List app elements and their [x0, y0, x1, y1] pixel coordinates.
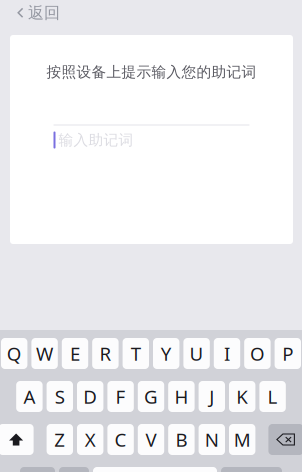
- button[interactable]: V: [138, 424, 164, 455]
- staticText: N: [205, 427, 219, 452]
- staticText: R: [99, 341, 111, 366]
- button[interactable]: H: [168, 381, 195, 412]
- staticText: W: [36, 341, 53, 366]
- staticText: F: [116, 384, 126, 409]
- staticText: H: [174, 384, 188, 409]
- staticText: S: [55, 384, 65, 409]
- staticText: J: [209, 384, 214, 409]
- button[interactable]: R: [92, 338, 119, 369]
- staticText: 输入助记词: [58, 131, 133, 149]
- button[interactable]: Y: [153, 338, 179, 369]
- button[interactable]: J: [199, 381, 225, 412]
- button[interactable]: Z: [47, 424, 73, 455]
- button[interactable]: Emoji: [59, 467, 89, 472]
- button[interactable]: 返回: [0, 0, 70, 26]
- button[interactable]: K: [229, 381, 255, 412]
- button[interactable]: T: [123, 338, 149, 369]
- button[interactable]: P: [275, 338, 301, 369]
- staticText: L: [268, 384, 278, 409]
- staticText: C: [115, 427, 127, 452]
- button[interactable]: Space: [93, 467, 217, 472]
- button[interactable]: L: [259, 381, 286, 412]
- button[interactable]: Q: [1, 338, 27, 369]
- button[interactable]: Return: [221, 467, 282, 472]
- staticText: Q: [7, 341, 22, 366]
- staticText: Y: [161, 341, 172, 366]
- staticText: I: [224, 341, 230, 366]
- button[interactable]: 123: [20, 467, 55, 472]
- button[interactable]: B: [168, 424, 195, 455]
- button[interactable]: Shift: [0, 424, 34, 455]
- staticText: Z: [54, 427, 65, 452]
- staticText: X: [85, 427, 96, 452]
- staticText: G: [144, 384, 158, 409]
- staticText: A: [23, 384, 35, 409]
- staticText: U: [190, 341, 204, 366]
- button[interactable]: G: [138, 381, 164, 412]
- staticText: V: [145, 427, 156, 452]
- staticText: T: [131, 341, 141, 366]
- button[interactable]: U: [183, 338, 210, 369]
- button[interactable]: A: [16, 381, 43, 412]
- staticText: O: [250, 341, 265, 366]
- staticText: E: [70, 341, 80, 366]
- button[interactable]: X: [77, 424, 103, 455]
- staticText: M: [234, 427, 251, 452]
- staticText: 按照设备上提示输入您的助记词: [46, 63, 256, 81]
- button[interactable]: I: [214, 338, 240, 369]
- staticText: P: [282, 341, 293, 366]
- button[interactable]: S: [47, 381, 73, 412]
- button[interactable]: Delete: [268, 424, 302, 455]
- button[interactable]: M: [229, 424, 255, 455]
- staticText: B: [175, 427, 187, 452]
- staticText: D: [83, 384, 97, 409]
- staticText: 返回: [28, 3, 60, 23]
- button[interactable]: C: [107, 424, 134, 455]
- staticText: K: [236, 384, 248, 409]
- button[interactable]: N: [199, 424, 225, 455]
- button[interactable]: E: [62, 338, 88, 369]
- button[interactable]: O: [244, 338, 271, 369]
- button[interactable]: W: [31, 338, 58, 369]
- button[interactable]: F: [107, 381, 134, 412]
- button[interactable]: D: [77, 381, 103, 412]
